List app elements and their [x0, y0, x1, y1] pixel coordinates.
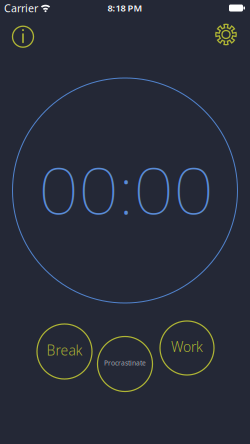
staticText: Work: [171, 337, 203, 356]
button[interactable]: Procrastinate: [97, 336, 152, 391]
staticText: Procrastinate: [104, 358, 146, 368]
staticText: 00:00: [45, 145, 207, 232]
button[interactable]: Work: [160, 321, 214, 375]
button[interactable]: Settings: [212, 20, 240, 48]
staticText: Carrier: [4, 1, 38, 15]
staticText: 8:18 PM: [107, 2, 142, 14]
staticText: Break: [46, 341, 82, 359]
button[interactable]: Break: [37, 324, 92, 379]
button[interactable]: Info: [9, 23, 37, 51]
